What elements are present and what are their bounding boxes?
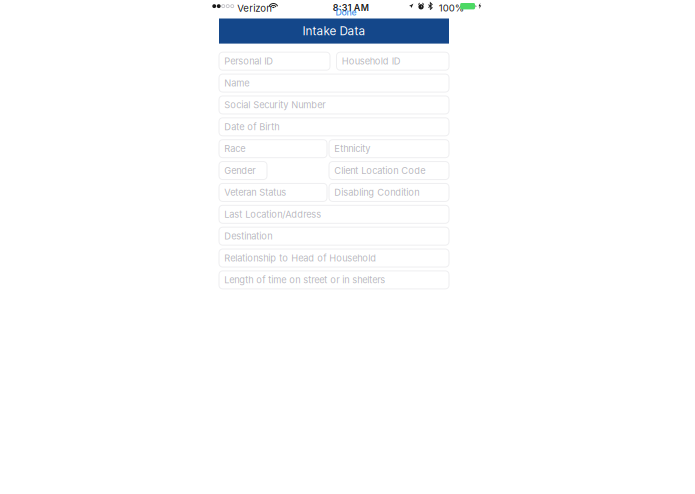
staticText: Relationship to Head of Household — [224, 252, 376, 264]
staticText: Length of time on street or in shelters — [224, 274, 385, 285]
button[interactable]: Disabling Condition — [329, 183, 449, 201]
staticText: Verizon — [237, 2, 272, 14]
staticText: Done — [335, 7, 356, 18]
staticText: 100% — [439, 2, 464, 14]
staticText: Personal ID — [224, 56, 273, 67]
staticText: Veteran Status — [224, 187, 286, 198]
staticText: Disabling Condition — [334, 187, 419, 198]
button[interactable]: Household ID — [336, 52, 449, 70]
button[interactable]: Gender — [219, 162, 267, 180]
staticText: Race — [224, 143, 245, 154]
button[interactable]: Ethnicity — [329, 140, 449, 158]
staticText: Last Location/Address — [224, 209, 321, 220]
staticText: Intake Data — [302, 24, 365, 38]
button[interactable]: Client Location Code — [329, 162, 449, 180]
staticText: Client Location Code — [334, 165, 425, 176]
button[interactable]: Personal ID — [219, 52, 330, 70]
staticText: Name — [224, 77, 249, 89]
staticText: 8:31 AM — [333, 2, 369, 13]
button[interactable]: Race — [219, 140, 327, 158]
staticText: Social Security Number — [224, 99, 325, 110]
button[interactable]: Name — [219, 74, 449, 92]
button[interactable]: Date of Birth — [219, 118, 449, 136]
button[interactable]: Veteran Status — [219, 183, 327, 201]
staticText: Household ID — [342, 56, 401, 67]
staticText: Destination — [224, 231, 272, 242]
button[interactable]: Social Security Number — [219, 96, 449, 114]
button[interactable]: Length of time on street or in shelters — [219, 271, 449, 289]
button[interactable]: Intake Data — [219, 18, 449, 44]
button[interactable]: Relationship to Head of Household — [219, 249, 449, 267]
button[interactable]: Last Location/Address — [219, 205, 449, 223]
button[interactable]: Done — [335, 7, 356, 18]
staticText: Ethnicity — [334, 143, 370, 154]
button[interactable]: Destination — [219, 227, 449, 245]
staticText: Date of Birth — [224, 121, 279, 132]
staticText: Gender — [224, 165, 255, 176]
